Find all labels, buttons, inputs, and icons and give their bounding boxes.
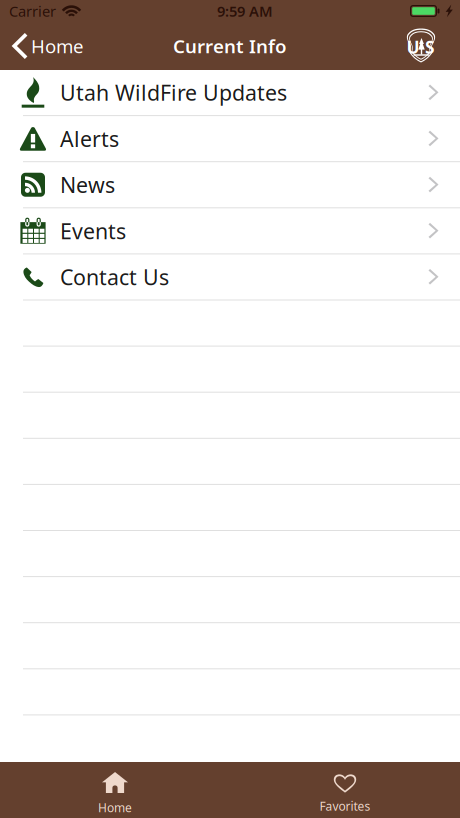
button[interactable]: Alerts	[0, 116, 460, 161]
staticText: U	[407, 35, 420, 58]
button[interactable]: Contact Us	[0, 254, 460, 299]
staticText: Current Info	[173, 34, 287, 58]
staticText: News	[60, 171, 115, 199]
staticText: Events	[60, 217, 126, 245]
button[interactable]: Utah WildFire Updates	[0, 70, 460, 115]
button[interactable]: Events	[0, 208, 460, 253]
staticText: Home	[98, 799, 132, 815]
staticText: Carrier	[9, 1, 56, 21]
staticText: Home	[31, 34, 84, 58]
staticText: 9:59 AM	[217, 1, 273, 21]
button[interactable]: Favorites	[230, 762, 460, 818]
staticText: Alerts	[60, 124, 119, 153]
staticText: Contact Us	[60, 263, 169, 291]
staticText: Utah WildFire Updates	[60, 78, 287, 107]
button[interactable]: News	[0, 162, 460, 207]
button[interactable]: Forest Service	[405, 22, 460, 70]
button[interactable]: Home	[0, 22, 92, 70]
staticText: S	[425, 35, 435, 58]
button[interactable]: Home	[0, 762, 230, 818]
staticText: Favorites	[319, 798, 370, 814]
